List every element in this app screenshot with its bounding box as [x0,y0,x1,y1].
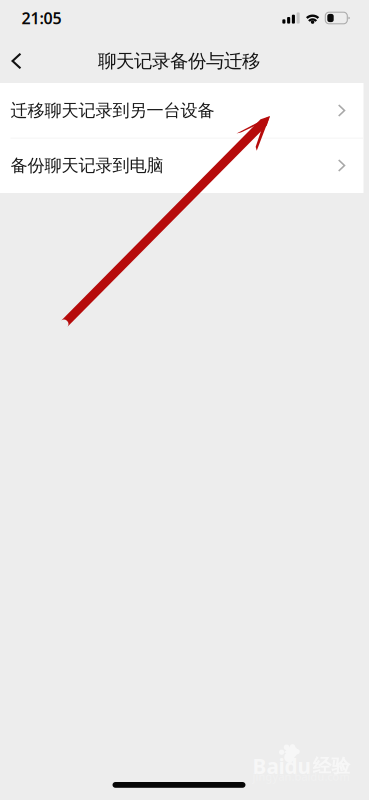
staticText: jingyan.baidu.com [252,769,349,784]
staticText: 备份聊天记录到电脑 [10,155,163,176]
staticText: Baidu [252,752,310,780]
staticText: 21:05 [21,7,61,29]
button[interactable]: 备份聊天记录到电脑 [0,138,363,193]
staticText: 聊天记录备份与迁移 [98,49,260,73]
button[interactable]: Back [0,39,38,83]
staticText: 迁移聊天记录到另一台设备 [10,100,214,121]
staticText: 经验 [312,754,350,778]
button[interactable]: 迁移聊天记录到另一台设备 [0,83,363,138]
